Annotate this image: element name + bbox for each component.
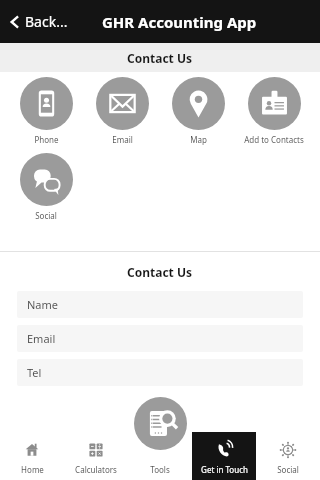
button[interactable]: Social bbox=[256, 432, 320, 480]
staticText: Social bbox=[35, 210, 57, 221]
staticText: Tools bbox=[150, 464, 170, 475]
staticText: Tel bbox=[27, 365, 42, 380]
button[interactable]: Tools bbox=[128, 432, 192, 480]
button[interactable]: Phone bbox=[8, 77, 84, 145]
staticText: Map bbox=[190, 134, 207, 145]
button[interactable]: Add to Contacts bbox=[236, 77, 312, 145]
button[interactable]: Tel bbox=[17, 359, 303, 386]
button[interactable]: Home bbox=[0, 432, 64, 480]
button[interactable]: Map bbox=[160, 77, 236, 145]
staticText: Name bbox=[27, 297, 59, 312]
staticText: Calculators bbox=[75, 464, 117, 475]
button[interactable]: Name bbox=[17, 291, 303, 318]
button[interactable]: Get in Touch bbox=[192, 432, 256, 480]
staticText: Back... bbox=[25, 12, 68, 31]
button[interactable]: Back... bbox=[8, 12, 68, 31]
staticText: Contact Us bbox=[127, 50, 193, 66]
staticText: GHR Accounting App bbox=[102, 12, 257, 32]
staticText: Email bbox=[27, 331, 56, 346]
button[interactable]: Email bbox=[84, 77, 160, 145]
staticText: Home bbox=[21, 464, 44, 475]
staticText: Social bbox=[277, 464, 299, 475]
staticText: Phone bbox=[34, 134, 59, 145]
button[interactable]: Calculators bbox=[64, 432, 128, 480]
staticText: Email bbox=[112, 134, 133, 145]
button[interactable]: Tools bbox=[134, 397, 187, 450]
staticText: Add to Contacts bbox=[244, 134, 304, 145]
staticText: Get in Touch bbox=[201, 464, 248, 475]
button[interactable]: Social bbox=[8, 153, 84, 221]
button[interactable]: Email bbox=[17, 325, 303, 352]
staticText: Contact Us bbox=[127, 264, 193, 280]
